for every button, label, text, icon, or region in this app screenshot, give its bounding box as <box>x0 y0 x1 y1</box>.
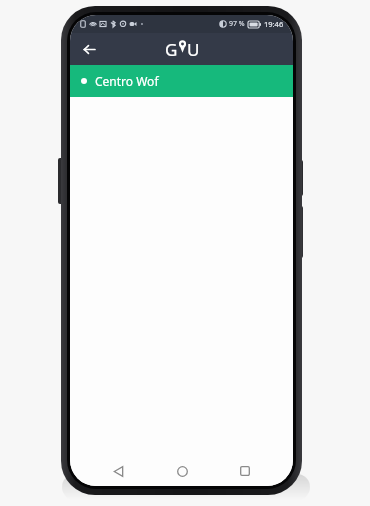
button[interactable]: Centro Wof <box>70 65 293 97</box>
button[interactable]: Back <box>103 456 133 486</box>
button[interactable]: Recent apps <box>230 456 260 486</box>
button[interactable]: Back <box>76 36 102 62</box>
staticText: Centro Wof <box>95 73 159 89</box>
staticText: 19:46 <box>264 19 284 29</box>
staticText: G <box>165 38 178 61</box>
staticText: 97 % <box>229 19 245 29</box>
staticText: U <box>187 38 200 61</box>
button[interactable]: Home <box>167 456 197 486</box>
